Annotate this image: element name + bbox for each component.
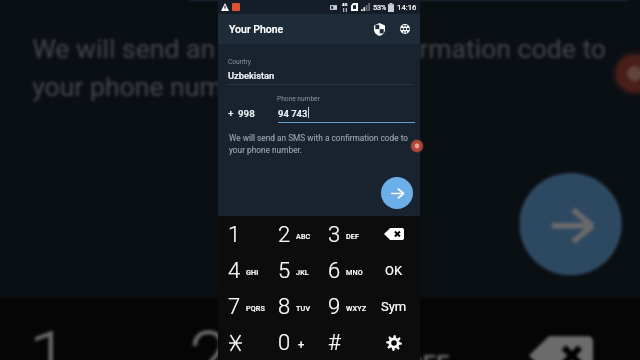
staticText: PQRS <box>246 304 266 312</box>
staticText: ABC <box>296 232 311 240</box>
button[interactable]: Backspace <box>481 298 640 360</box>
staticText: JKL <box>296 268 309 276</box>
staticText: 94 743 <box>278 108 308 119</box>
staticText: Phone number <box>277 95 320 103</box>
staticText: WXYZ <box>346 304 367 312</box>
staticText: 4G <box>342 2 348 7</box>
button[interactable]: Next <box>381 177 413 209</box>
button[interactable]: 2 <box>268 216 318 252</box>
staticText: 1 <box>29 317 71 360</box>
staticText: # <box>328 330 341 356</box>
staticText: 9 <box>328 294 341 320</box>
staticText: Sym <box>381 299 407 314</box>
staticText: We will send an SMS with a confirmation … <box>32 32 609 64</box>
staticText: Uzbekistan <box>228 70 275 81</box>
staticText: DEF <box>407 349 452 360</box>
staticText: 0 <box>278 330 291 356</box>
staticText: ABC <box>247 349 295 360</box>
button[interactable]: 0 <box>268 324 318 360</box>
button[interactable]: Sym <box>369 288 420 324</box>
staticText: Country <box>228 58 251 66</box>
staticText: We will send an SMS with a confirmation … <box>229 133 409 143</box>
button[interactable]: Next <box>519 173 622 275</box>
button[interactable]: 1 <box>218 216 268 252</box>
staticText: your phone number. <box>32 70 269 102</box>
staticText: TUV <box>296 304 311 312</box>
button[interactable]: 1 <box>0 298 157 360</box>
button[interactable]: 4 <box>218 252 268 288</box>
staticText: 4 <box>228 258 241 284</box>
staticText: DEF <box>346 232 360 240</box>
staticText: 1 <box>228 222 241 248</box>
staticText: MNO <box>346 268 363 276</box>
staticText: 5 <box>278 258 291 284</box>
button[interactable]: Security <box>369 19 389 39</box>
staticText: + <box>228 108 234 119</box>
staticText: 6 <box>328 258 341 284</box>
staticText: 3 <box>349 317 391 360</box>
button[interactable]: 8 <box>268 288 318 324</box>
staticText: Your Phone <box>229 23 284 35</box>
button[interactable]: 2 <box>157 298 317 360</box>
button[interactable]: 9 <box>318 288 369 324</box>
button[interactable]: 3 <box>318 216 369 252</box>
button[interactable]: 6 <box>318 252 369 288</box>
staticText: 8 <box>278 294 291 320</box>
button[interactable]: Backspace <box>369 216 420 252</box>
staticText: 3 <box>328 222 341 248</box>
button[interactable]: 5 <box>268 252 318 288</box>
button[interactable]: 3 <box>317 298 481 360</box>
staticText: 7 <box>228 294 241 320</box>
staticText: 2 <box>278 222 291 248</box>
staticText: 14:16 <box>397 3 417 12</box>
button[interactable]: Keyboard settings <box>369 324 420 360</box>
staticText: 998 <box>238 108 255 119</box>
staticText: 2 <box>189 317 231 360</box>
button[interactable]: # <box>318 324 369 360</box>
button[interactable]: 7 <box>218 288 268 324</box>
staticText: + <box>298 337 305 350</box>
button[interactable]: OK <box>369 252 420 288</box>
staticText: GHI <box>246 268 259 276</box>
button[interactable]: Change language <box>395 19 415 39</box>
staticText: your phone number. <box>229 145 303 155</box>
staticText: 53% <box>373 3 387 11</box>
button[interactable]: Asterisk <box>218 324 268 360</box>
staticText: OK <box>385 263 403 278</box>
